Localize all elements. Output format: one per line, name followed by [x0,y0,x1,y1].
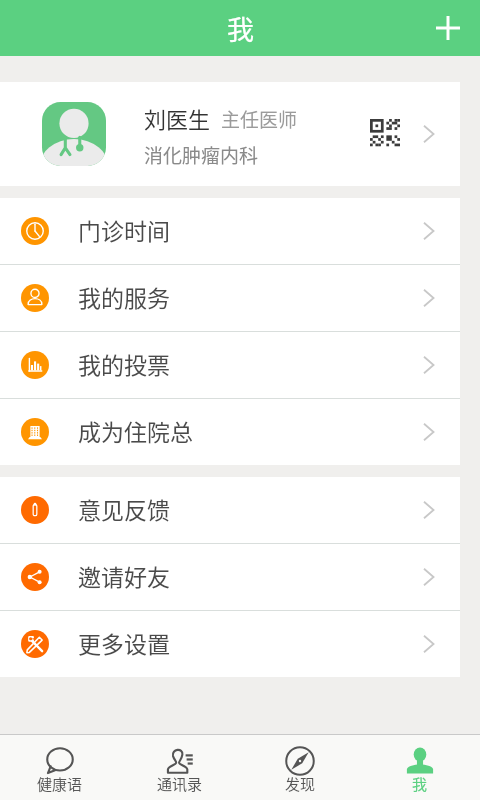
staticText: 意见反馈 [78,492,170,525]
staticText: 我的服务 [78,280,170,313]
button[interactable]: 门诊时间 [0,198,460,264]
staticText: 发现 [285,773,316,795]
staticText: 门诊时间 [78,213,170,246]
staticText: 我 [227,9,254,48]
staticText: 健康语 [37,773,83,795]
staticText: 消化肿瘤内科 [144,141,259,169]
other: QR code [370,119,400,149]
button[interactable]: 健康语 [0,735,120,800]
button[interactable]: 刘医生 [0,82,460,186]
button[interactable]: 发现 [240,735,360,800]
staticText: 通讯录 [157,773,203,795]
button[interactable]: 我的投票 [0,332,460,398]
staticText: 成为住院总 [78,414,193,447]
button[interactable]: 我的服务 [0,265,460,331]
staticText: 更多设置 [78,626,170,659]
button[interactable]: 我 [360,735,480,800]
button[interactable]: 通讯录 [120,735,240,800]
staticText: 主任医师 [221,105,298,133]
staticText: 我的投票 [78,347,170,380]
staticText: 我 [412,773,428,795]
staticText: 邀请好友 [78,559,170,592]
button[interactable]: 更多设置 [0,611,460,677]
button[interactable]: 成为住院总 [0,399,460,465]
button[interactable]: Add [420,0,476,56]
staticText: 刘医生 [144,102,211,134]
button[interactable]: 邀请好友 [0,544,460,610]
button[interactable]: 意见反馈 [0,477,460,543]
